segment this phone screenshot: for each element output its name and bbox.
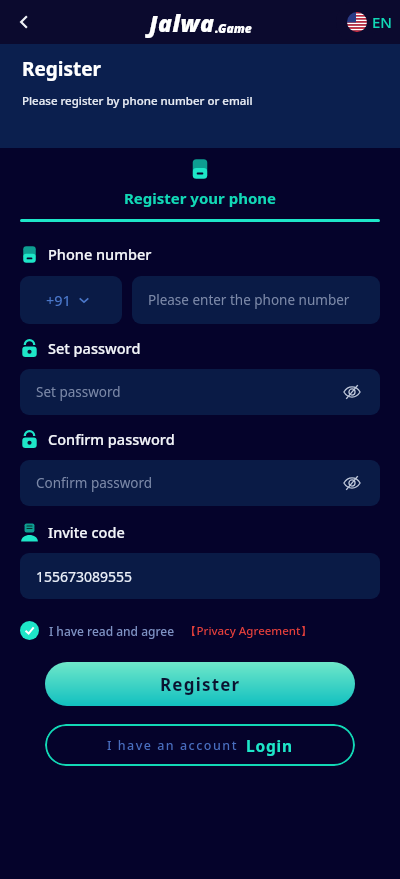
button[interactable]: I have read and agree bbox=[20, 621, 312, 640]
staticText: I have an account bbox=[107, 737, 238, 754]
staticText: Register bbox=[160, 673, 241, 696]
button[interactable]: Back bbox=[6, 4, 42, 40]
button[interactable]: Set password bbox=[20, 369, 380, 415]
staticText: .Game bbox=[215, 20, 252, 36]
staticText: Invite code bbox=[48, 522, 125, 542]
button[interactable]: Please enter the phone number bbox=[132, 276, 380, 324]
staticText: Please register by phone number or email bbox=[22, 93, 253, 109]
staticText: Confirm password bbox=[48, 429, 175, 449]
button[interactable]: Register your phone bbox=[0, 158, 400, 222]
button[interactable]: I have an account bbox=[45, 724, 355, 766]
staticText: Register bbox=[22, 56, 102, 82]
staticText: I have read and agree bbox=[49, 623, 175, 639]
staticText: 155673089555 bbox=[36, 567, 133, 586]
staticText: Phone number bbox=[48, 244, 152, 264]
staticText: +91 bbox=[46, 290, 71, 310]
button[interactable]: Show password bbox=[340, 471, 364, 495]
staticText: Set password bbox=[48, 338, 141, 358]
button[interactable]: Confirm password bbox=[20, 460, 380, 506]
staticText: EN bbox=[372, 12, 392, 32]
button[interactable]: Show password bbox=[340, 380, 364, 404]
staticText: Login bbox=[246, 735, 293, 756]
staticText: Register your phone bbox=[124, 188, 276, 208]
staticText: Set password bbox=[36, 383, 340, 401]
button[interactable]: Language bbox=[347, 12, 392, 32]
staticText: Confirm password bbox=[36, 474, 340, 492]
staticText: Jalwa bbox=[149, 7, 215, 38]
button[interactable]: +91 bbox=[20, 276, 122, 324]
button[interactable]: 155673089555 bbox=[20, 553, 380, 599]
staticText: Please enter the phone number bbox=[148, 291, 350, 309]
button[interactable]: 【Privacy Agreement】 bbox=[185, 623, 312, 639]
button[interactable]: Register bbox=[45, 662, 355, 706]
other: Language bbox=[347, 12, 367, 32]
